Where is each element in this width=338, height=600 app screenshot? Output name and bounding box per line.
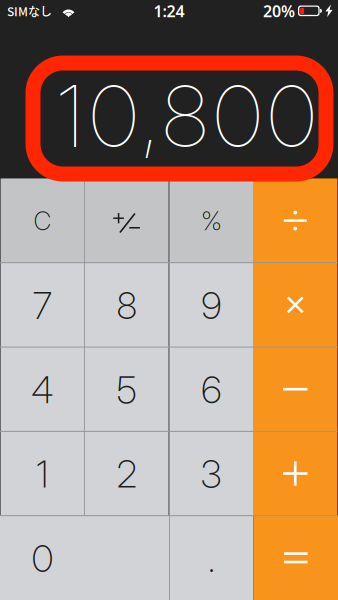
staticText: C (34, 206, 51, 236)
staticText: 0 (32, 536, 53, 581)
staticText: 1:24 (153, 0, 184, 22)
staticText: 5 (117, 367, 137, 412)
staticText: 8 (117, 283, 137, 328)
button[interactable]: 8 (85, 263, 168, 347)
staticText: 2 (117, 451, 137, 497)
button[interactable]: 0 (0, 516, 169, 600)
staticText: 10,800 (57, 64, 315, 168)
button[interactable]: 2 (85, 431, 168, 516)
staticText: . (208, 536, 216, 581)
staticText: 3 (201, 451, 222, 497)
button[interactable]: 7 (0, 263, 84, 347)
button[interactable]: Minus (253, 347, 337, 431)
button[interactable]: 5 (85, 347, 168, 431)
button[interactable]: Divide (253, 178, 337, 263)
button[interactable]: Plus (253, 431, 337, 516)
button[interactable]: 3 (169, 431, 253, 516)
staticText: 1 (36, 451, 48, 497)
staticText: 6 (201, 367, 221, 412)
staticText: % (201, 206, 221, 236)
staticText: 9 (201, 283, 221, 328)
button[interactable]: Percent (169, 178, 253, 263)
button[interactable]: Clear (0, 178, 84, 263)
button[interactable]: Equals (253, 516, 338, 600)
button[interactable]: 9 (169, 263, 253, 347)
button[interactable]: Plus minus (85, 178, 168, 263)
staticText: 7 (33, 283, 52, 328)
button[interactable]: Multiply (253, 263, 337, 347)
staticText: SIMなし (7, 2, 52, 20)
button[interactable]: 1 (0, 431, 84, 516)
staticText: 20% (263, 0, 295, 22)
staticText: 4 (31, 367, 53, 412)
button[interactable]: 6 (169, 347, 253, 431)
button[interactable]: . (170, 516, 253, 600)
button[interactable]: 4 (0, 347, 84, 431)
